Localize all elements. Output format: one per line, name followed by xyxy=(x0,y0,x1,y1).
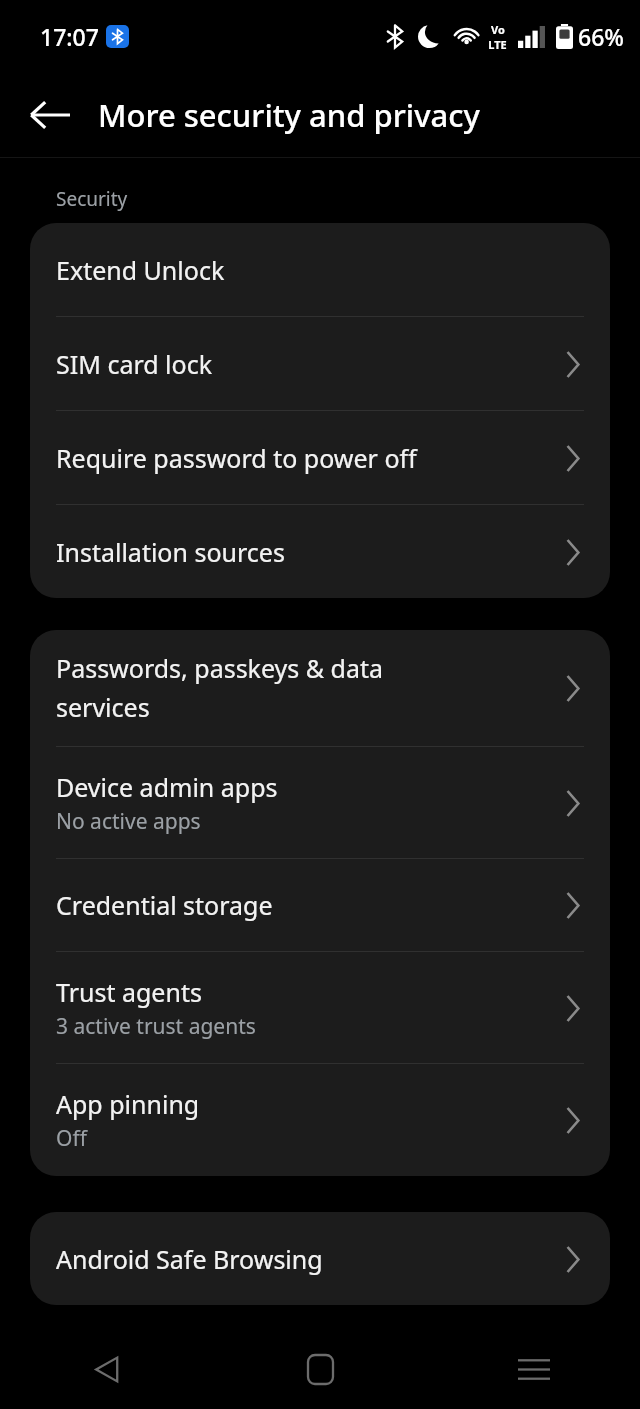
staticText: Passwords, passkeys & data services xyxy=(56,651,456,725)
button[interactable]: Extend Unlock xyxy=(30,223,610,316)
staticText: Require password to power off xyxy=(56,441,417,475)
button[interactable]: Navigate up xyxy=(16,81,84,149)
staticText: App pinning xyxy=(56,1087,200,1121)
staticText: 3 active trust agents xyxy=(56,1012,256,1041)
button[interactable]: Passwords, passkeys & data services xyxy=(30,630,610,746)
staticText: Security xyxy=(56,186,128,212)
staticText: 17:07 xyxy=(40,21,99,52)
button[interactable]: Credential storage xyxy=(30,859,610,951)
button[interactable]: Back xyxy=(0,1330,214,1409)
staticText: Android Safe Browsing xyxy=(56,1242,323,1276)
staticText: Credential storage xyxy=(56,888,273,922)
staticText: More security and privacy xyxy=(98,94,480,136)
staticText: No active apps xyxy=(56,807,201,836)
staticText: Extend Unlock xyxy=(56,253,225,287)
staticText: LTE xyxy=(488,37,507,52)
button[interactable]: Installation sources xyxy=(30,505,610,598)
staticText: Device admin apps xyxy=(56,770,278,804)
button[interactable]: Home xyxy=(214,1330,427,1409)
button[interactable]: Recent apps xyxy=(427,1330,640,1409)
staticText: SIM card lock xyxy=(56,347,213,381)
staticText: Off xyxy=(56,1124,87,1153)
button[interactable]: Require password to power off xyxy=(30,411,610,504)
button[interactable]: Trust agents xyxy=(30,952,610,1063)
staticText: Vo xyxy=(491,22,505,37)
staticText: Installation sources xyxy=(56,535,285,569)
staticText: Trust agents xyxy=(56,975,202,1009)
button[interactable]: Android Safe Browsing xyxy=(30,1212,610,1305)
button[interactable]: SIM card lock xyxy=(30,317,610,410)
button[interactable]: App pinning xyxy=(30,1064,610,1176)
button[interactable]: Device admin apps xyxy=(30,747,610,858)
staticText: 66% xyxy=(578,21,624,52)
